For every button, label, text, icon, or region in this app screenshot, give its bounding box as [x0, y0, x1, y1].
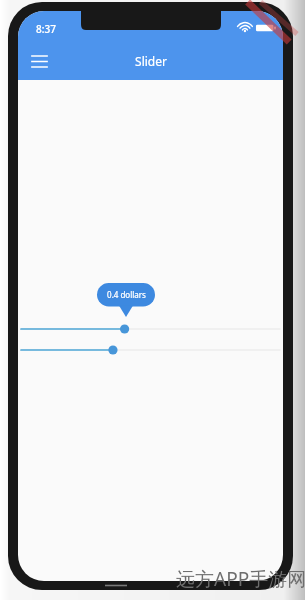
staticText: 8:37: [36, 22, 56, 36]
button[interactable]: [18, 338, 283, 362]
staticText: 0.4 dollars: [107, 289, 146, 300]
button[interactable]: Open navigation menu: [21, 43, 57, 79]
button[interactable]: 0.4 dollars: [18, 283, 283, 338]
staticText: 远方APP手游网: [176, 566, 305, 592]
staticText: Slider: [135, 53, 167, 69]
